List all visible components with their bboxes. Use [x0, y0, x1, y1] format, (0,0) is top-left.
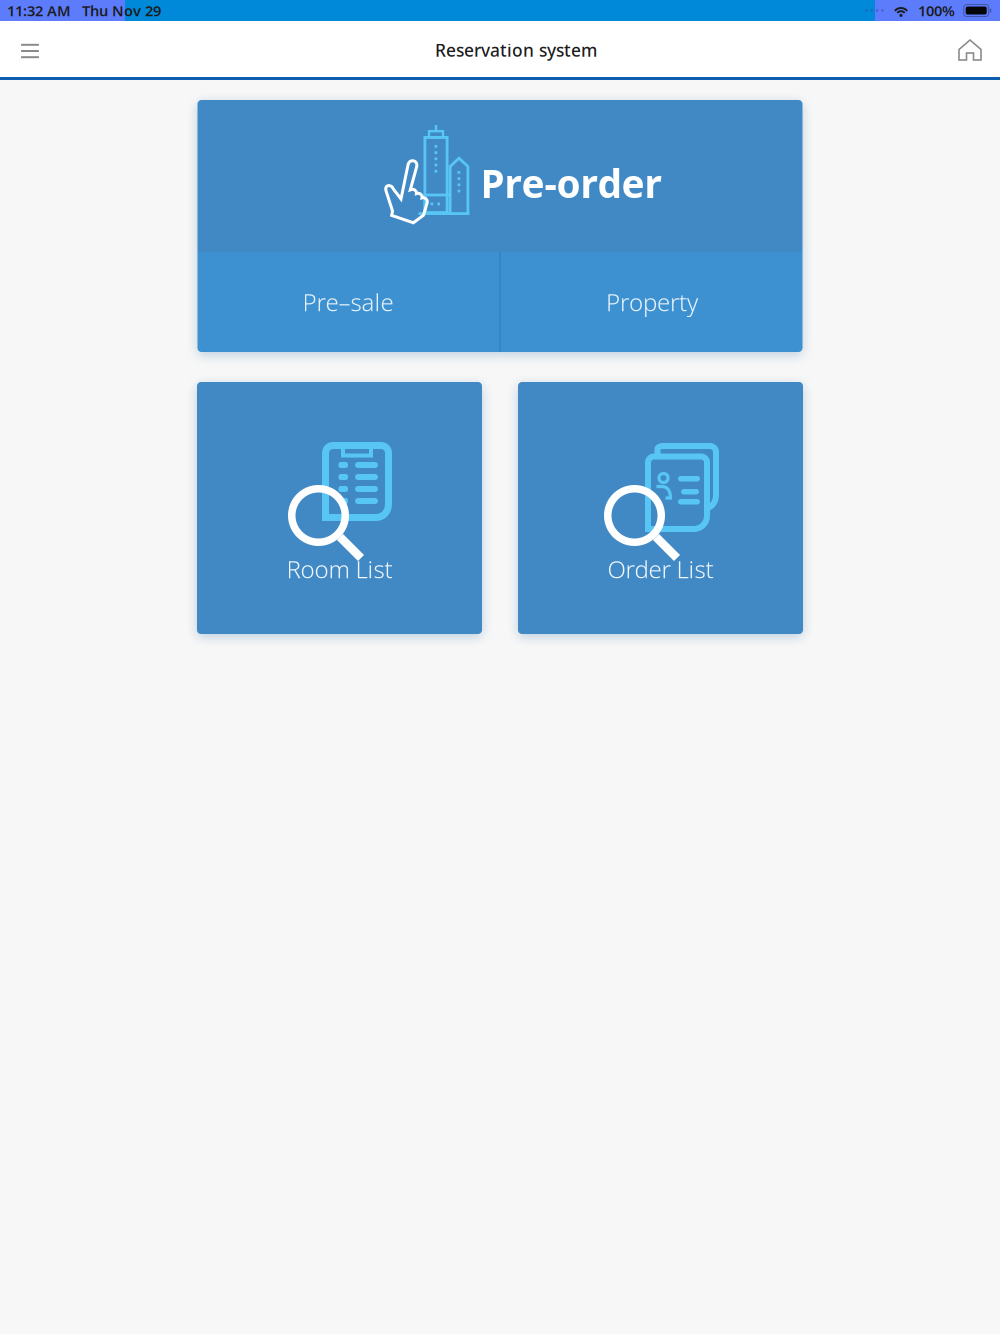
button[interactable]: Room List — [197, 382, 482, 634]
button[interactable]: Pre–sale — [197, 252, 499, 352]
button[interactable]: Property — [501, 252, 803, 352]
button[interactable]: Menu — [4, 21, 56, 77]
staticText: Thu Nov 29 — [82, 1, 161, 20]
button[interactable]: Order List — [518, 382, 803, 634]
staticText: Room List — [286, 553, 392, 585]
staticText: Property — [606, 286, 698, 318]
staticText: 11:32 AM — [7, 1, 71, 20]
staticText: Reservation system — [435, 38, 597, 61]
staticText: 100% — [918, 1, 955, 20]
staticText: Pre–sale — [302, 286, 393, 318]
button[interactable]: Pre-order — [197, 100, 802, 252]
staticText: Pre-order — [480, 157, 661, 209]
button[interactable]: Home — [944, 21, 996, 77]
staticText: Order List — [607, 553, 713, 585]
